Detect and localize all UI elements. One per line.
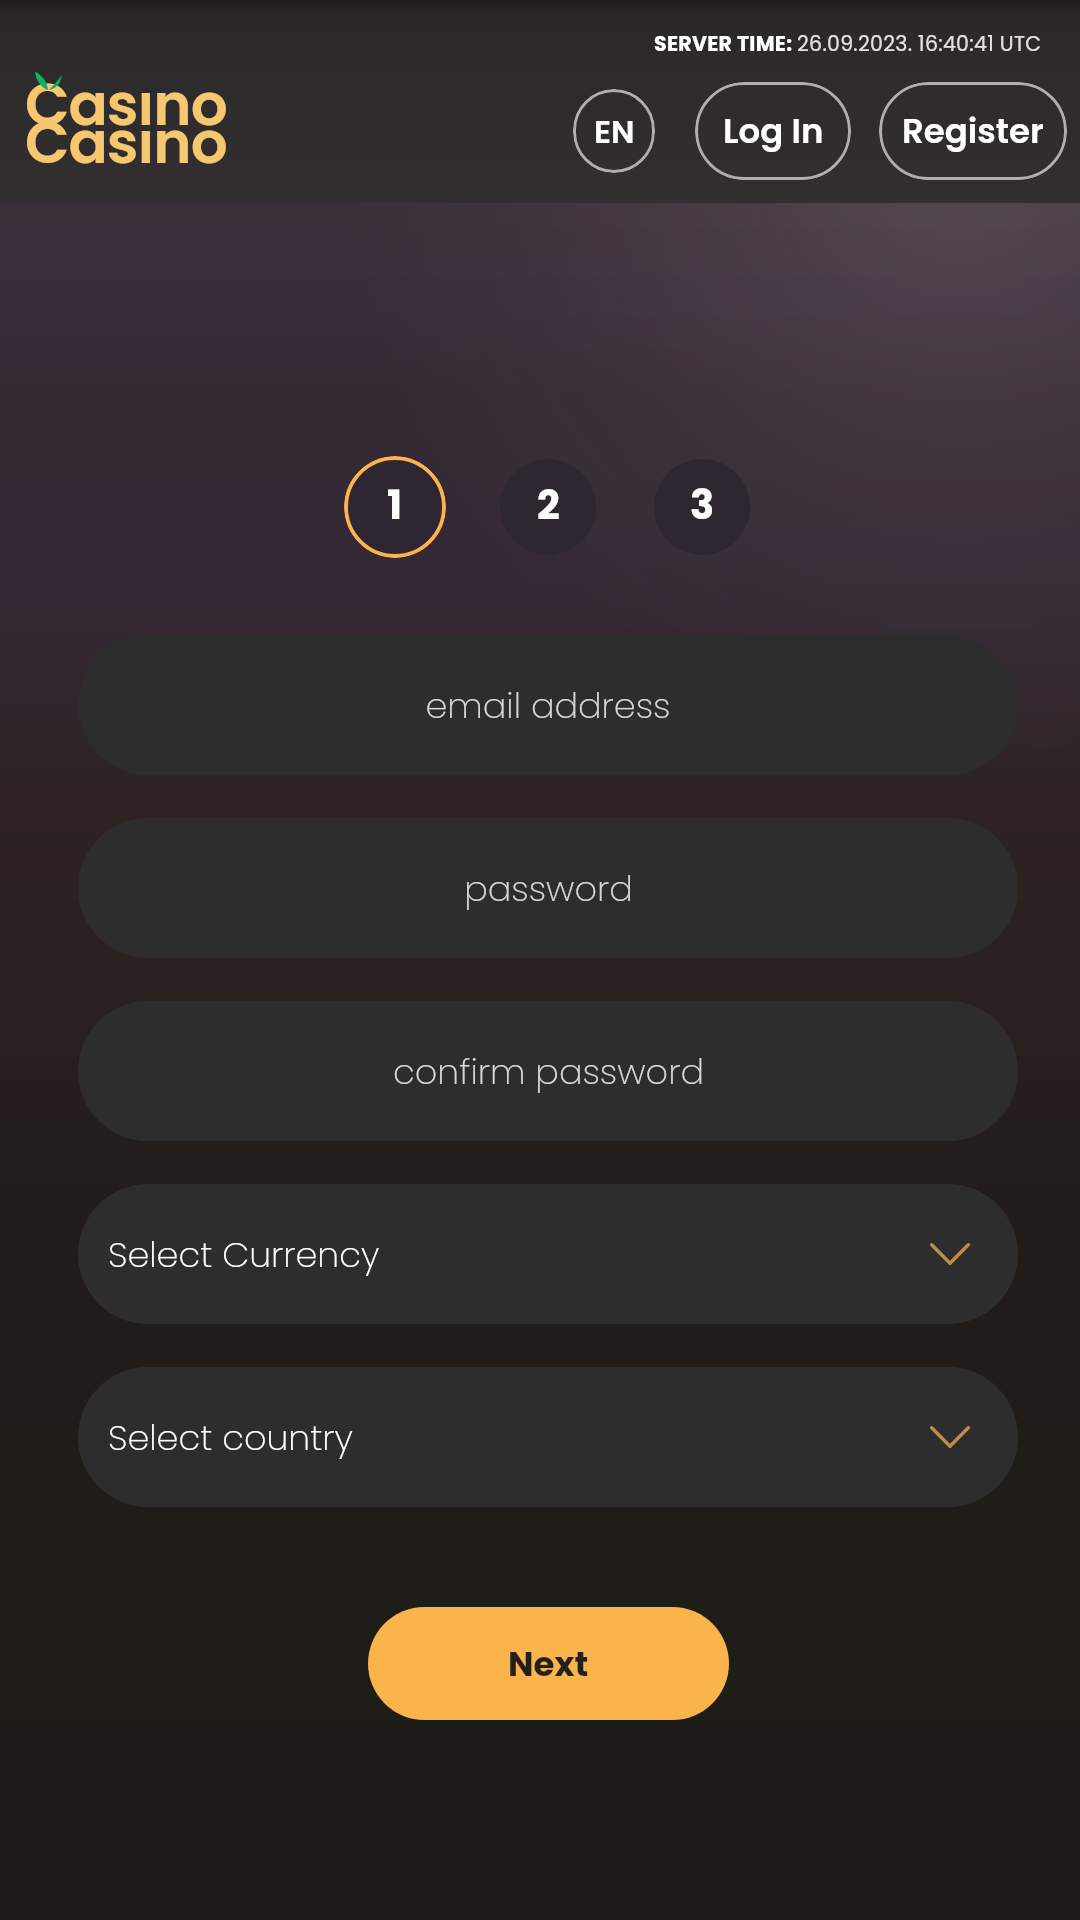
button[interactable]: EN bbox=[573, 89, 655, 173]
staticText: 3 bbox=[690, 477, 715, 533]
staticText: Casıno bbox=[25, 102, 227, 183]
staticText: Select Currency bbox=[108, 1230, 380, 1279]
button[interactable]: 1 bbox=[344, 456, 446, 558]
button[interactable]: confirm password bbox=[78, 1001, 1018, 1141]
staticText: confirm password bbox=[393, 1047, 704, 1096]
staticText: Register bbox=[902, 107, 1044, 155]
button[interactable]: 2 bbox=[500, 459, 596, 555]
button[interactable]: CasinoCasino home bbox=[25, 77, 235, 177]
staticText: email address bbox=[425, 681, 671, 730]
staticText: EN bbox=[594, 109, 635, 154]
staticText: 1 bbox=[387, 477, 403, 533]
staticText: password bbox=[464, 864, 633, 913]
button[interactable]: 3 bbox=[654, 459, 750, 555]
button[interactable]: password bbox=[78, 818, 1018, 958]
button[interactable]: Register bbox=[879, 82, 1067, 180]
button[interactable]: email address bbox=[78, 635, 1018, 775]
staticText: SERVER TIME: 26.09.2023. 16:40:41 UTC bbox=[654, 29, 1042, 58]
button[interactable]: Select Currency bbox=[78, 1184, 1018, 1324]
staticText: Casıno bbox=[25, 64, 227, 145]
staticText: Next bbox=[508, 1640, 589, 1688]
staticText: Select country bbox=[108, 1413, 353, 1462]
button[interactable]: Select country bbox=[78, 1367, 1018, 1507]
staticText: Log In bbox=[723, 107, 824, 155]
button[interactable]: Next bbox=[368, 1607, 729, 1720]
staticText: 2 bbox=[537, 477, 560, 533]
button[interactable]: Log In bbox=[695, 82, 851, 180]
